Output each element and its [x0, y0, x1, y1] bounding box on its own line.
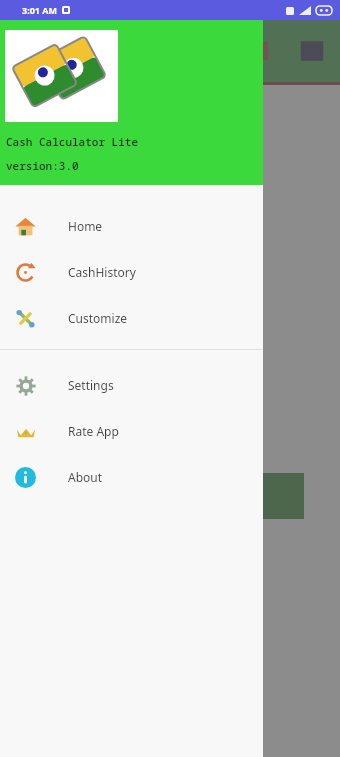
staticText: Settings	[68, 377, 114, 393]
button[interactable]: Customize	[0, 295, 263, 341]
staticText: Rate App	[68, 423, 119, 439]
staticText: Cash Calculator Lite	[6, 134, 138, 149]
staticText: Home	[68, 218, 103, 234]
staticText: CashHistory	[68, 264, 136, 280]
button[interactable]: Rate App	[0, 408, 263, 454]
staticText: 0	[131, 346, 140, 366]
staticText: version:3.0	[6, 158, 79, 173]
button[interactable]: Settings	[0, 362, 263, 408]
button[interactable]: About	[0, 454, 263, 500]
button[interactable]: CashHistory	[0, 249, 263, 295]
staticText: 3:01 AM	[22, 4, 58, 16]
staticText: Grand Total	[0, 97, 340, 127]
button[interactable]: Home	[0, 203, 263, 249]
staticText: About	[68, 469, 103, 485]
staticText: 0	[131, 270, 140, 290]
button[interactable]: CLEAR	[36, 473, 304, 519]
staticText: Customize	[68, 310, 128, 326]
